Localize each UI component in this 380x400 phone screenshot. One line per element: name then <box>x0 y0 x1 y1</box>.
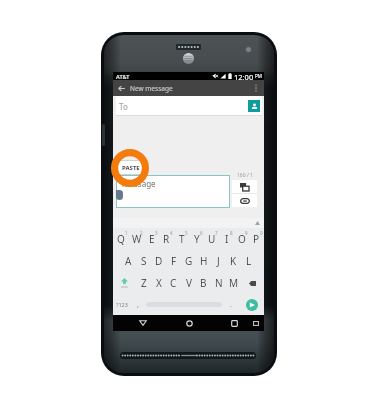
button[interactable]: Menu <box>248 315 264 331</box>
staticText: X <box>156 276 162 290</box>
staticText: G <box>185 254 193 268</box>
staticText: message <box>122 178 156 189</box>
button[interactable]: A <box>121 250 136 272</box>
button[interactable]: Send <box>239 294 264 315</box>
staticText: To <box>119 101 128 112</box>
staticText: N <box>215 276 223 290</box>
button[interactable]: O <box>234 228 249 250</box>
button[interactable]: G <box>181 250 196 272</box>
staticText: 5 <box>185 230 188 236</box>
button[interactable]: I <box>219 228 234 250</box>
button[interactable]: B <box>196 272 211 294</box>
button[interactable]: Attach <box>232 194 257 207</box>
staticText: 3 <box>155 230 158 236</box>
staticText: 2 <box>140 230 143 236</box>
staticText: ?123 <box>116 301 128 308</box>
button[interactable]: More options <box>251 83 261 93</box>
staticText: 1 <box>125 230 128 236</box>
staticText: M <box>229 276 239 290</box>
staticText: , <box>137 300 139 310</box>
button[interactable]: Backspace <box>241 272 264 294</box>
button[interactable]: Back <box>115 82 127 94</box>
staticText: 0 <box>260 230 263 236</box>
staticText: 8 <box>230 230 233 236</box>
button[interactable]: R <box>159 228 174 250</box>
button[interactable]: K <box>226 250 241 272</box>
staticText: AT&T <box>116 73 130 80</box>
staticText: B <box>200 276 207 290</box>
staticText: 7 <box>215 230 218 236</box>
button[interactable]: P <box>249 228 264 250</box>
button[interactable]: N <box>211 272 226 294</box>
button[interactable]: PASTE <box>117 160 145 175</box>
staticText: 4 <box>170 230 173 236</box>
button[interactable]: M <box>226 272 241 294</box>
button[interactable]: C <box>166 272 181 294</box>
staticText: T <box>179 232 185 246</box>
button[interactable]: X <box>151 272 166 294</box>
button[interactable]: W <box>129 228 144 250</box>
button[interactable]: J <box>211 250 226 272</box>
staticText: E <box>149 232 155 246</box>
staticText: P <box>253 232 260 246</box>
staticText: R <box>163 232 170 246</box>
button[interactable]: , <box>130 294 145 315</box>
staticText: C <box>170 276 177 290</box>
staticText: U <box>208 232 216 246</box>
staticText: I <box>225 232 229 246</box>
staticText: A <box>125 254 132 268</box>
staticText: Y <box>194 232 200 246</box>
button[interactable]: Space <box>145 294 223 315</box>
button[interactable]: Add contact <box>248 100 260 112</box>
button[interactable]: V <box>181 272 196 294</box>
staticText: PASTE <box>122 164 140 172</box>
staticText: Z <box>141 276 147 290</box>
staticText: F <box>171 254 177 268</box>
staticText: D <box>155 254 163 268</box>
button[interactable]: Home <box>179 315 199 331</box>
staticText: 12:00 <box>234 72 254 80</box>
button[interactable]: message <box>122 178 230 208</box>
staticText: PM <box>255 73 262 79</box>
staticText: S <box>141 254 147 268</box>
staticText: Q <box>117 232 125 246</box>
button[interactable]: Z <box>136 272 151 294</box>
staticText: J <box>217 254 220 268</box>
button[interactable]: U <box>204 228 219 250</box>
staticText: W <box>132 232 142 246</box>
staticText: New message <box>130 84 173 93</box>
button[interactable]: Q <box>113 228 129 250</box>
staticText: O <box>238 232 246 246</box>
button[interactable]: Y <box>189 228 204 250</box>
staticText: 6 <box>200 230 203 236</box>
button[interactable]: D <box>151 250 166 272</box>
staticText: H <box>200 254 208 268</box>
button[interactable]: L <box>241 250 256 272</box>
staticText: K <box>230 254 237 268</box>
staticText: 160 / 1 <box>237 172 253 179</box>
staticText: V <box>186 276 192 290</box>
button[interactable]: T <box>174 228 189 250</box>
button[interactable]: Back <box>133 315 153 331</box>
button[interactable]: S <box>136 250 151 272</box>
staticText: . <box>230 300 232 310</box>
button[interactable]: F <box>166 250 181 272</box>
button[interactable]: Recents <box>224 315 244 331</box>
staticText: L <box>246 254 252 268</box>
staticText: 9 <box>245 230 248 236</box>
button[interactable]: Shift <box>113 272 136 294</box>
button[interactable]: E <box>144 228 159 250</box>
button[interactable]: H <box>196 250 211 272</box>
button[interactable]: ?123 <box>113 294 130 315</box>
button[interactable]: Sticker <box>232 180 257 193</box>
